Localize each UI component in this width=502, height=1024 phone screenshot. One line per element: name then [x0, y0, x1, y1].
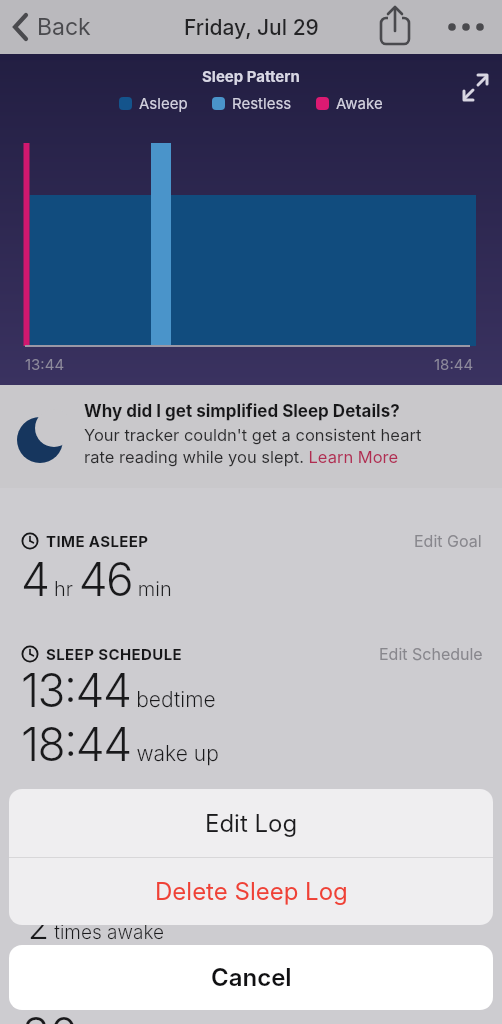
staticText: Awake — [336, 94, 383, 112]
button[interactable] — [376, 4, 416, 50]
staticText: Asleep — [139, 94, 188, 112]
staticText: Friday, Jul 29 — [184, 15, 319, 40]
button[interactable]: Edit Schedule — [379, 644, 483, 663]
button[interactable]: rate reading while you slept. Learn More — [84, 447, 399, 467]
staticText: 18:44 wake up — [21, 716, 219, 772]
button[interactable]: Edit Log — [9, 789, 493, 857]
button[interactable] — [456, 66, 496, 106]
staticText: Delete Sleep Log — [155, 877, 348, 906]
staticText: 13:44 — [25, 355, 65, 373]
staticText: 30 — [22, 1006, 79, 1024]
button[interactable]: Delete Sleep Log — [9, 857, 493, 925]
staticText: Back — [37, 13, 91, 41]
staticText: SLEEP SCHEDULE — [46, 645, 183, 663]
button[interactable]: Edit Goal — [414, 531, 482, 550]
staticText: Your tracker couldn't get a consistent h… — [84, 425, 422, 445]
staticText: 13:44 bedtime — [21, 662, 216, 718]
button[interactable] — [440, 10, 492, 46]
staticText: TIME ASLEEP — [46, 532, 149, 550]
staticText: Cancel — [211, 963, 292, 992]
staticText: Why did I get simplified Sleep Details? — [84, 401, 400, 422]
staticText: 18:44 — [434, 355, 474, 373]
staticText: 4 hr 46 min — [21, 551, 172, 607]
button[interactable]: Cancel — [9, 945, 493, 1010]
button[interactable]: Back — [12, 13, 91, 41]
staticText: 2 times awake — [28, 906, 165, 947]
staticText: Sleep Pattern — [202, 67, 300, 85]
staticText: Restless — [232, 94, 292, 112]
staticText: Edit Log — [205, 809, 298, 838]
